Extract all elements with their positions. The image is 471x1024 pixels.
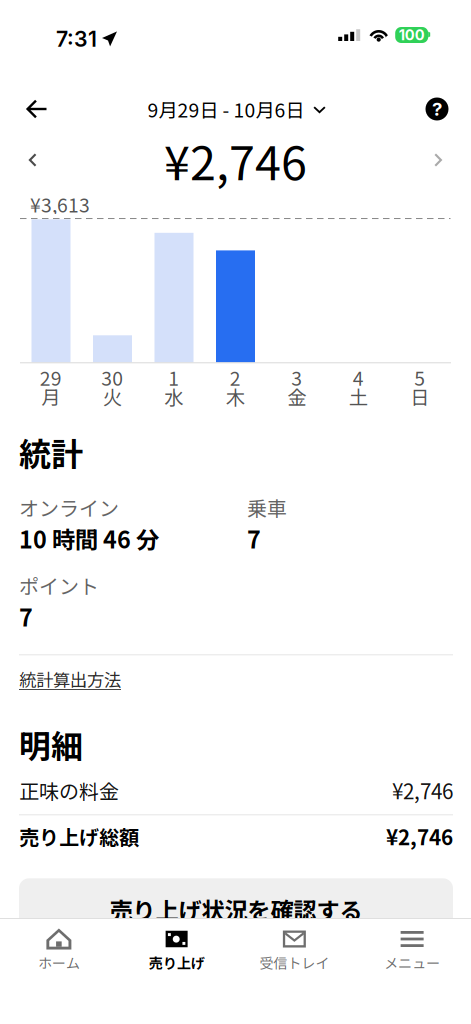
button[interactable]: メニュー — [353, 919, 471, 1024]
button[interactable]: Back — [14, 86, 58, 132]
button[interactable]: 売り上げ — [118, 919, 236, 1024]
staticText: ポイント — [19, 571, 99, 600]
staticText: 29 — [40, 363, 62, 391]
staticText: 4 — [353, 363, 364, 391]
button[interactable]: 統計算出方法 — [19, 655, 121, 694]
staticText: 正味の料金 — [19, 776, 119, 805]
staticText: 明細 — [19, 721, 83, 767]
staticText: 3 — [291, 363, 302, 391]
staticText: 統計 — [19, 429, 83, 475]
staticText: ホーム — [38, 952, 80, 973]
staticText: 受信トレイ — [259, 952, 329, 973]
staticText: 乗車 — [247, 493, 287, 522]
button[interactable]: 受信トレイ — [235, 919, 353, 1024]
staticText: 10 時間 46 分 — [19, 521, 159, 555]
button[interactable]: 売り上げ状況を確認する — [19, 878, 453, 940]
staticText: 売り上げ総額 — [19, 822, 139, 851]
button[interactable]: 9月29日 - 10月6日 — [147, 86, 325, 132]
staticText: オンライン — [19, 493, 119, 522]
staticText: 火 — [103, 382, 122, 410]
button[interactable]: Next week — [417, 132, 461, 188]
staticText: ¥2,746 — [164, 126, 307, 194]
button[interactable]: Previous week — [10, 132, 54, 188]
staticText: ¥2,746 — [386, 821, 453, 851]
staticText: 100 — [399, 26, 425, 44]
staticText: 木 — [226, 382, 245, 410]
staticText: ¥2,746 — [392, 775, 453, 805]
staticText: 売り上げ — [149, 952, 205, 973]
staticText: ¥3,613 — [30, 190, 90, 218]
staticText: 7 — [19, 599, 33, 633]
staticText: 5 — [414, 363, 425, 391]
button[interactable]: Help — [415, 86, 459, 132]
staticText: 月 — [41, 382, 60, 410]
staticText: 7:31 — [56, 26, 97, 52]
staticText: 日 — [410, 382, 429, 410]
staticText: 金 — [287, 382, 306, 410]
staticText: 売り上げ状況を確認する — [109, 892, 362, 926]
staticText: 9月29日 - 10月6日 — [147, 95, 304, 123]
button[interactable]: ホーム — [0, 919, 118, 1024]
staticText: 1 — [168, 363, 179, 391]
staticText: 2 — [230, 363, 241, 391]
staticText: 土 — [349, 382, 368, 410]
staticText: 水 — [164, 382, 183, 410]
staticText: 30 — [101, 363, 123, 391]
staticText: メニュー — [384, 952, 440, 973]
staticText: ? — [432, 98, 442, 120]
staticText: 統計算出方法 — [19, 667, 121, 692]
staticText: 7 — [247, 521, 261, 555]
